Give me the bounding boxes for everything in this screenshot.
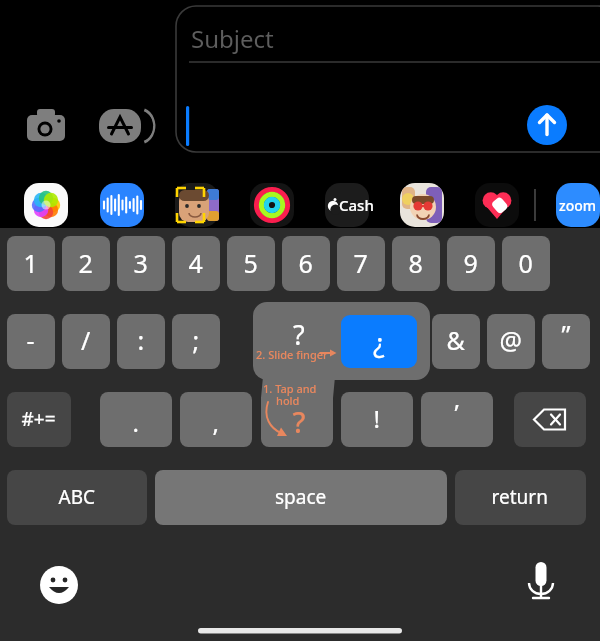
button[interactable]: Apple Cash — [325, 183, 369, 227]
button[interactable]: 6 — [282, 236, 330, 291]
button[interactable]: 0 — [502, 236, 550, 291]
button[interactable]: More symbols — [7, 392, 71, 447]
button[interactable]: Camera — [25, 105, 67, 147]
button[interactable]: Delete — [514, 392, 586, 447]
button[interactable]: ! — [341, 392, 413, 447]
button[interactable]: Memoji Camera — [175, 183, 219, 227]
button[interactable]: : — [117, 314, 165, 369]
button[interactable]: Inverted question mark — [341, 315, 417, 368]
button[interactable]: Audio Message — [100, 183, 144, 227]
button[interactable]: 5 — [227, 236, 275, 291]
button[interactable]: 9 — [447, 236, 495, 291]
button[interactable]: . — [100, 392, 172, 447]
button[interactable]: Dictation — [521, 558, 561, 602]
button[interactable]: ; — [172, 314, 220, 369]
button[interactable]: ? — [261, 392, 333, 447]
button[interactable]: App Store — [99, 105, 143, 147]
button[interactable]: 1 — [7, 236, 55, 291]
button[interactable]: Apostrophe — [421, 392, 493, 447]
button[interactable]: return — [455, 470, 586, 525]
button[interactable]: 3 — [117, 236, 165, 291]
button[interactable]: 4 — [172, 236, 220, 291]
button[interactable]: Quotation mark — [542, 314, 590, 369]
button[interactable]: 8 — [392, 236, 440, 291]
button[interactable]: space — [155, 470, 447, 525]
button[interactable]: / — [62, 314, 110, 369]
button[interactable]: Emoji — [40, 566, 80, 606]
button[interactable]: ABC — [7, 470, 147, 525]
button[interactable]: Send — [527, 105, 567, 145]
button[interactable]: Photos — [24, 183, 68, 227]
button[interactable]: Zoom — [556, 183, 600, 227]
button[interactable]: Health — [475, 183, 519, 227]
button[interactable]: , — [180, 392, 252, 447]
button[interactable]: Memoji Stickers — [400, 183, 444, 227]
button[interactable]: 7 — [337, 236, 385, 291]
button[interactable]: 2 — [62, 236, 110, 291]
button[interactable]: - — [7, 314, 55, 369]
button[interactable]: & — [432, 314, 480, 369]
button[interactable]: @ — [487, 314, 535, 369]
button[interactable]: Activity — [250, 183, 294, 227]
